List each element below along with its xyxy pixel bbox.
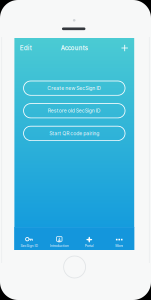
staticText: Create new SecSign ID (47, 85, 101, 91)
button[interactable]: SecSign ID (14, 227, 44, 250)
staticText: Restore old SecSign ID (48, 108, 101, 114)
button[interactable]: Add account (117, 38, 134, 58)
staticText: More (115, 244, 123, 248)
button[interactable]: Restore old SecSign ID (23, 104, 125, 118)
staticText: SecSign ID (20, 244, 38, 248)
button[interactable]: Create new SecSign ID (23, 81, 125, 95)
button[interactable]: Start QR code pairing (23, 126, 125, 140)
staticText: Edit (20, 44, 32, 52)
button[interactable]: Introduction (44, 227, 74, 250)
staticText: Accounts (61, 44, 88, 52)
staticText: Introduction (50, 244, 69, 248)
button[interactable]: Edit (14, 38, 36, 58)
staticText: Portal (85, 244, 94, 248)
button[interactable]: Portal (74, 227, 104, 250)
staticText: Start QR code pairing (49, 130, 99, 136)
button[interactable]: More (104, 227, 134, 250)
